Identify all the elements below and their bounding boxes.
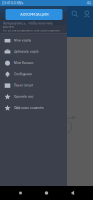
staticText: АВТОРИЗАЦИЯ (20, 12, 48, 17)
button[interactable]: Оцените нас (0, 91, 67, 102)
button[interactable]: Home (33, 186, 59, 200)
staticText: Пакет Smart (14, 84, 33, 87)
button[interactable]: Мои карты (0, 35, 67, 46)
staticText: 23:41 0.0 KB/s (1, 1, 23, 5)
button[interactable]: Мой баланс (0, 57, 67, 69)
button[interactable]: Пакет Smart (0, 80, 67, 91)
staticText: Оцените нас (14, 95, 34, 98)
button[interactable]: Search (69, 9, 81, 19)
button[interactable]: Добавить карту (0, 46, 67, 57)
button[interactable]: АВТОРИЗАЦИЯ (5, 9, 62, 20)
button[interactable]: Офф-лайн кошелёк (0, 102, 67, 114)
button[interactable]: Back (59, 186, 85, 200)
staticText: Авторизуйтесь, чтобы получить доступ ко … (3, 22, 60, 32)
button[interactable]: Account (81, 9, 93, 19)
button[interactable]: Recent apps (7, 186, 33, 200)
staticText: Сообщения (14, 72, 32, 76)
staticText: Мой баланс (14, 61, 34, 65)
staticText: Офф-лайн кошелёк (14, 106, 44, 110)
staticText: Мои карты (14, 39, 31, 42)
button[interactable]: Сообщения (0, 69, 67, 80)
staticText: Добавить карту (14, 50, 39, 53)
staticText: 4G (86, 1, 91, 5)
